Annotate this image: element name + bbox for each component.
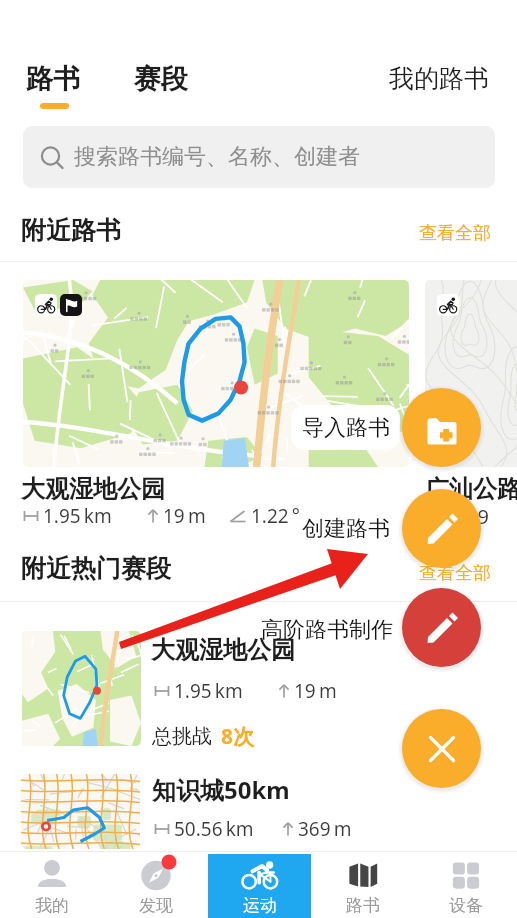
staticText: 路书 [346,895,380,916]
staticText: 大观湿地公园 [151,635,295,665]
button[interactable]: 查看全部 [419,562,491,585]
staticText: 1.22 ° [251,503,300,529]
button[interactable]: 导入路书 [291,405,400,450]
button[interactable]: 查看全部 [419,222,491,245]
staticText: 导入路书 [302,414,390,442]
staticText: 8次 [221,722,255,751]
staticText: 50.56 km [174,816,254,842]
staticText: 19 m [294,678,337,704]
button[interactable]: 赛段 [134,62,188,96]
button[interactable]: 大观湿地公园 [0,602,517,754]
button[interactable] [23,280,409,467]
button[interactable]: 关闭 [402,709,481,788]
staticText: 广汕公路 [425,474,517,504]
button[interactable] [425,280,517,467]
button[interactable]: 导入路书 [402,388,481,467]
staticText: 1.95 km [43,503,112,529]
staticText: 运动 [243,895,277,916]
button[interactable]: 搜索路书编号、名称、创建者 [23,126,495,188]
staticText: 39 [466,503,489,530]
staticText: 发现 [139,895,173,916]
button[interactable]: 路书 [311,854,414,918]
button[interactable]: 高阶路书制作 [261,616,393,644]
staticText: 附近路书 [21,215,121,246]
staticText: 369 m [298,816,352,842]
button[interactable]: 我的路书 [389,63,489,94]
button[interactable]: 创建路书 [402,489,481,568]
staticText: 搜索路书编号、名称、创建者 [74,143,360,171]
staticText: 大观湿地公园 [21,474,165,504]
button[interactable]: 路书 [26,62,80,109]
button[interactable]: 知识城50km [0,756,517,856]
button[interactable]: 创建路书 [302,515,390,543]
staticText: 路书 [26,62,80,96]
staticText: 设备 [449,895,483,916]
staticText: 知识城50km [152,773,290,806]
staticText: 19 m [163,503,206,529]
button[interactable]: 运动 [208,854,311,918]
staticText: 附近热门赛段 [21,553,171,584]
staticText: 我的 [35,895,69,916]
staticText: 1.95 km [174,678,243,704]
staticText: 总挑战 [152,724,212,749]
button[interactable]: 高阶路书制作 [402,588,481,667]
button[interactable]: 发现 [104,854,208,918]
button[interactable]: 设备 [414,854,517,918]
button[interactable]: 我的 [0,854,104,918]
